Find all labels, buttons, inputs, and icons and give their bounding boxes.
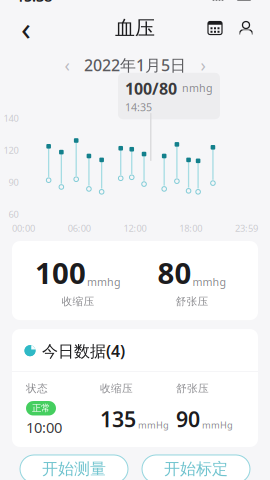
staticText: 140	[3, 112, 18, 124]
button[interactable]: Profile	[230, 10, 262, 46]
button[interactable]: Calendar	[200, 10, 230, 46]
staticText: nmhg	[182, 81, 213, 95]
button[interactable]: Back	[8, 10, 44, 46]
staticText: 06:00	[68, 222, 91, 234]
staticText: 舒张压	[176, 382, 209, 395]
staticText: 00:00	[12, 222, 35, 234]
staticText: 12:00	[123, 222, 146, 234]
staticText: 14:35	[125, 100, 152, 114]
staticText: 120	[3, 144, 18, 156]
button[interactable]: 开始标定	[142, 455, 250, 480]
staticText: 100/80	[125, 78, 177, 99]
staticText: 状态	[26, 382, 48, 395]
staticText: 18:00	[179, 222, 202, 234]
staticText: mmhg	[87, 275, 121, 289]
button[interactable]: Previous day	[58, 54, 76, 76]
staticText: 收缩压	[61, 295, 94, 308]
staticText: mmhg	[192, 275, 226, 289]
staticText: 收缩压	[100, 382, 133, 395]
staticText: 血压	[115, 16, 155, 40]
staticText: 90	[8, 176, 18, 188]
staticText: 135	[100, 405, 136, 433]
staticText: 正常	[32, 402, 50, 414]
staticText: 60	[8, 208, 18, 220]
staticText: ‹	[64, 53, 69, 76]
staticText: 90	[176, 405, 200, 433]
staticText: 开始测量	[42, 459, 106, 479]
staticText: 舒张压	[175, 295, 208, 308]
staticText: 今日数据(4)	[42, 340, 125, 361]
staticText: 23:59	[235, 222, 258, 234]
staticText: 15:38	[16, 0, 52, 6]
button[interactable]: Next day	[194, 54, 212, 76]
staticText: mmHg	[202, 419, 233, 431]
staticText: 2022年1月5日	[84, 54, 186, 76]
staticText: ›	[200, 53, 205, 76]
staticText: mmHg	[138, 419, 169, 431]
staticText: 100	[35, 253, 86, 292]
staticText: 10:00	[26, 417, 62, 437]
staticText: 开始标定	[164, 459, 228, 479]
button[interactable]: 正常	[12, 401, 258, 447]
staticText: ‹	[21, 7, 31, 49]
button[interactable]: 开始测量	[20, 455, 128, 480]
staticText: 80	[157, 253, 191, 292]
